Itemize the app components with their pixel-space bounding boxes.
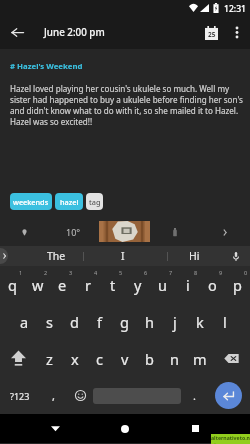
staticText: 6	[144, 269, 148, 276]
staticText: l	[223, 312, 227, 332]
button[interactable]: Expand suggestions	[0, 248, 8, 264]
staticText: 2	[44, 269, 48, 276]
button[interactable]: Calendar	[198, 16, 224, 49]
button[interactable]: The	[16, 246, 97, 266]
button[interactable]: hazel	[55, 193, 83, 210]
staticText: Hazel loved playing her cousin's ukulele…	[10, 83, 246, 127]
staticText: The	[47, 249, 66, 263]
button[interactable]: Voice input	[222, 246, 250, 266]
staticText: 12:31	[224, 3, 247, 15]
staticText: f	[97, 312, 102, 332]
button[interactable]: x	[62, 340, 87, 377]
button[interactable]: m	[187, 340, 212, 377]
button[interactable]: t	[100, 266, 125, 303]
button[interactable]: h	[137, 303, 162, 340]
staticText: 8	[194, 269, 198, 276]
staticText: 7	[169, 269, 173, 276]
button[interactable]: More suggestions	[212, 218, 237, 246]
button[interactable]: .	[181, 377, 207, 414]
staticText: c	[96, 349, 103, 369]
button[interactable]: c	[87, 340, 112, 377]
staticText: # Hazel's Weekend	[10, 61, 83, 72]
button[interactable]: z	[37, 340, 62, 377]
button[interactable]: u	[150, 266, 175, 303]
staticText: I	[121, 249, 125, 263]
button[interactable]: e	[50, 266, 75, 303]
button[interactable]: q	[0, 266, 25, 303]
button[interactable]: i	[175, 266, 200, 303]
staticText: j	[173, 312, 177, 332]
button[interactable]: f	[87, 303, 112, 340]
button[interactable]: ?123	[0, 377, 40, 414]
staticText: s	[46, 312, 53, 332]
button[interactable]: b	[137, 340, 162, 377]
staticText: e	[58, 275, 67, 295]
button[interactable]: w	[25, 266, 50, 303]
button[interactable]: r	[75, 266, 100, 303]
staticText: hazel	[60, 197, 79, 207]
button[interactable]: o	[200, 266, 225, 303]
staticText: weekends	[13, 197, 49, 207]
staticText: y	[134, 275, 142, 295]
button[interactable]: Attachment	[163, 218, 187, 246]
staticText: u	[158, 275, 167, 295]
button[interactable]: n	[162, 340, 187, 377]
button[interactable]: weekends	[10, 193, 52, 210]
button[interactable]: 10°	[60, 218, 86, 246]
staticText: 25	[208, 30, 216, 39]
button[interactable]: Photo attachment	[99, 221, 150, 242]
staticText: tag	[89, 197, 101, 207]
button[interactable]: y	[125, 266, 150, 303]
button[interactable]: Shift	[0, 340, 37, 377]
staticText: June 2:00 pm	[44, 26, 105, 39]
staticText: k	[196, 312, 204, 332]
button[interactable]: a	[12, 303, 37, 340]
button[interactable]: I	[84, 246, 161, 266]
button[interactable]: ,	[40, 377, 67, 414]
staticText: v	[121, 349, 129, 369]
button[interactable]: v	[112, 340, 137, 377]
staticText: 5	[119, 269, 123, 276]
button[interactable]: More options	[226, 16, 248, 49]
staticText: 1	[19, 269, 23, 276]
staticText: g	[120, 312, 129, 332]
staticText: .	[193, 388, 196, 403]
staticText: 4	[94, 269, 98, 276]
staticText: r	[85, 275, 91, 295]
button[interactable]: p	[225, 266, 250, 303]
button[interactable]: l	[212, 303, 237, 340]
button[interactable]: tag	[86, 193, 103, 210]
button[interactable]: Hi	[168, 246, 220, 266]
button[interactable]: Recents	[180, 414, 210, 443]
button[interactable]: Emoji	[67, 377, 93, 414]
staticText: ?123	[10, 390, 30, 402]
staticText: z	[46, 349, 53, 369]
staticText: ,	[52, 388, 55, 403]
button[interactable]: Home	[110, 414, 140, 443]
staticText: n	[170, 349, 179, 369]
button[interactable]: Location	[11, 218, 37, 246]
staticText: p	[233, 275, 242, 295]
staticText: q	[8, 275, 17, 295]
button[interactable]: Backspace	[212, 340, 250, 377]
staticText: b	[145, 349, 154, 369]
button[interactable]: g	[112, 303, 137, 340]
button[interactable]: Back	[5, 16, 29, 49]
staticText: d	[70, 312, 79, 332]
button[interactable]: s	[37, 303, 62, 340]
staticText: t	[110, 275, 116, 295]
staticText: m	[193, 349, 207, 369]
button[interactable]: k	[187, 303, 212, 340]
staticText: x	[71, 349, 79, 369]
button[interactable]: Enter	[215, 382, 242, 409]
staticText: 0	[244, 269, 248, 276]
staticText: i	[186, 275, 190, 295]
button[interactable]: Back	[40, 414, 70, 443]
staticText: a	[20, 312, 29, 332]
button[interactable]: j	[162, 303, 187, 340]
staticText: alternativeto.net	[211, 434, 250, 444]
staticText: 9	[219, 269, 223, 276]
button[interactable]: d	[62, 303, 87, 340]
staticText: h	[145, 312, 154, 332]
